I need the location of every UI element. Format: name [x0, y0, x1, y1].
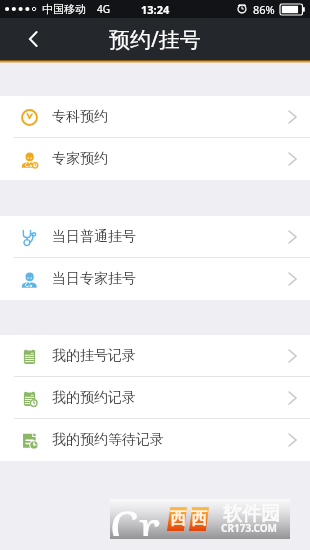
staticText: 西 [170, 509, 186, 529]
staticText: 我的预约记录 [52, 389, 136, 407]
button[interactable]: 当日专家挂号 [0, 258, 310, 300]
staticText: 13:24 [141, 2, 170, 17]
staticText: 我的挂号记录 [52, 347, 136, 365]
staticText: 专科预约 [52, 108, 108, 126]
staticText: 专家预约 [52, 150, 108, 168]
button[interactable]: 我的预约记录 [0, 377, 310, 419]
staticText: CR173.COM [221, 521, 278, 535]
staticText: 西 [191, 509, 207, 529]
button[interactable]: 我的挂号记录 [0, 335, 310, 377]
staticText: 86% [253, 2, 275, 17]
staticText: 软件园 [223, 502, 280, 526]
button[interactable]: 专家预约 [0, 138, 310, 180]
staticText: 当日专家挂号 [52, 270, 136, 288]
button[interactable]: Back [0, 18, 67, 60]
button[interactable]: 我的预约等待记录 [0, 419, 310, 461]
staticText: 我的预约等待记录 [52, 431, 164, 449]
staticText: 当日普通挂号 [52, 228, 136, 246]
staticText: Cr [110, 496, 160, 536]
button[interactable]: 当日普通挂号 [0, 216, 310, 258]
button[interactable]: 专科预约 [0, 96, 310, 138]
staticText: 预约/挂号 [109, 25, 201, 54]
staticText: 4G [97, 2, 110, 16]
staticText: 中国移动 [42, 2, 86, 16]
